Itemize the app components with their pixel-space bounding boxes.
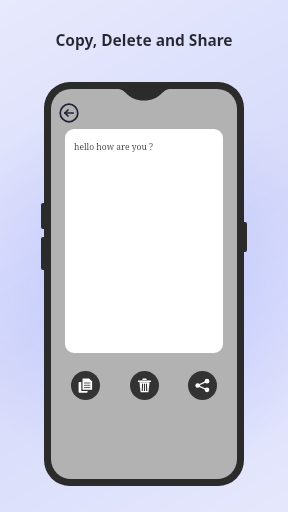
staticText: Copy, Delete and Share (55, 29, 233, 50)
button[interactable]: Back (59, 103, 79, 123)
button[interactable]: Share (188, 371, 217, 400)
button[interactable]: hello how are you ? (65, 129, 223, 353)
staticText: hello how are you ? (74, 141, 154, 153)
button[interactable]: Delete (130, 371, 159, 400)
button[interactable]: Copy (71, 371, 100, 400)
